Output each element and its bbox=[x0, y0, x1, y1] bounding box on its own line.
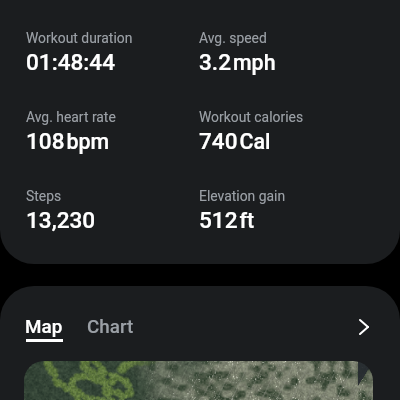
staticText: Steps bbox=[26, 188, 62, 204]
staticText: 108 bpm bbox=[26, 128, 110, 154]
staticText: Workout calories bbox=[199, 109, 304, 125]
staticText: 13,230 bbox=[26, 207, 96, 233]
button[interactable]: Open map details bbox=[350, 313, 378, 341]
staticText: Elevation gain bbox=[199, 188, 286, 204]
staticText: Workout duration bbox=[26, 30, 133, 46]
staticText: 512 ft bbox=[199, 207, 255, 233]
staticText: 3.2 mph bbox=[199, 49, 276, 75]
button[interactable]: Chart bbox=[87, 316, 134, 338]
staticText: Avg. heart rate bbox=[26, 109, 116, 125]
staticText: 740 Cal bbox=[199, 128, 271, 154]
staticText: Map bbox=[25, 316, 63, 338]
staticText: Chart bbox=[87, 316, 134, 338]
button[interactable]: Map bbox=[25, 316, 63, 338]
staticText: Avg. speed bbox=[199, 30, 267, 46]
staticText: 01:48:44 bbox=[26, 49, 116, 75]
